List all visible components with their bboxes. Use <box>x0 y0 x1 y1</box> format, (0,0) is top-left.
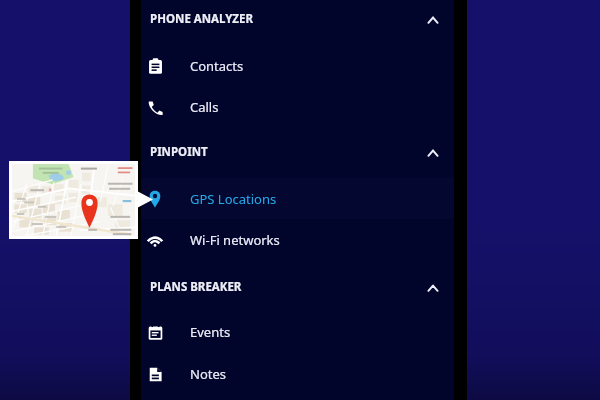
staticText: Calls <box>190 98 219 116</box>
button[interactable]: PHONE ANALYZER <box>141 7 454 31</box>
button[interactable]: Notes <box>141 355 454 392</box>
staticText: Wi-Fi networks <box>190 231 280 249</box>
button[interactable]: PLANS BREAKER <box>141 275 454 299</box>
button[interactable]: Events <box>141 313 454 350</box>
staticText: Events <box>190 323 231 341</box>
staticText: Contacts <box>190 57 244 75</box>
staticText: PLANS BREAKER <box>150 279 242 295</box>
staticText: Notes <box>190 365 226 383</box>
button[interactable]: Calls <box>141 88 454 125</box>
staticText: PINPOINT <box>150 144 208 160</box>
button[interactable]: Contacts <box>141 47 454 84</box>
button[interactable]: Map preview of GPS location <box>9 161 138 239</box>
button[interactable]: Wi-Fi networks <box>141 221 454 258</box>
staticText: PHONE ANALYZER <box>150 11 254 27</box>
button[interactable]: GPS Locations <box>141 178 454 219</box>
staticText: GPS Locations <box>190 190 277 208</box>
button[interactable]: PINPOINT <box>141 140 454 164</box>
